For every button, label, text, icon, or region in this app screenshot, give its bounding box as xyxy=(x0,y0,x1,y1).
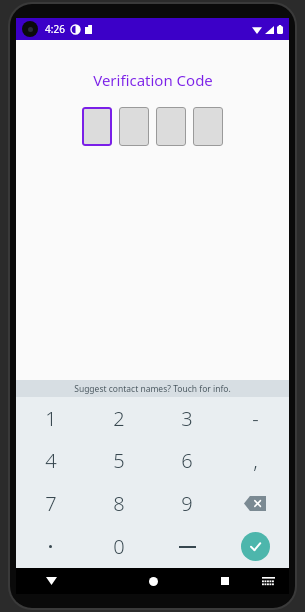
staticText: 4:26 xyxy=(45,22,65,36)
button[interactable]: 8 xyxy=(85,482,153,525)
button[interactable]: 1 xyxy=(16,397,85,439)
button[interactable] xyxy=(153,525,221,568)
button[interactable] xyxy=(119,107,149,146)
staticText: 8 xyxy=(113,490,125,517)
staticText: - xyxy=(252,405,259,432)
button[interactable]: 7 xyxy=(16,482,85,525)
button[interactable]: Delete xyxy=(221,482,289,525)
button[interactable] xyxy=(156,107,186,146)
button[interactable]: 0 xyxy=(85,525,153,568)
staticText: 1 xyxy=(45,405,57,432)
staticText: 9 xyxy=(181,490,193,517)
button[interactable]: 3 xyxy=(153,397,221,439)
button[interactable]: 6 xyxy=(153,439,221,482)
staticText: Verification Code xyxy=(93,70,213,90)
button[interactable]: , xyxy=(221,439,289,482)
staticText: 3 xyxy=(181,405,193,432)
staticText: 5 xyxy=(113,447,125,474)
button[interactable]: Suggest contact names? Touch for info. xyxy=(16,380,289,397)
button[interactable]: 4 xyxy=(16,439,85,482)
staticText: 0 xyxy=(113,533,125,560)
staticText: 2 xyxy=(113,405,125,432)
staticText: Suggest contact names? Touch for info. xyxy=(74,383,231,395)
button[interactable]: Home xyxy=(123,568,183,594)
button[interactable] xyxy=(82,107,112,146)
staticText: , xyxy=(253,447,258,474)
button[interactable]: Recents xyxy=(207,568,243,594)
button[interactable]: 2 xyxy=(85,397,153,439)
staticText: 6 xyxy=(181,447,193,474)
button[interactable]: 5 xyxy=(85,439,153,482)
button[interactable]: Confirm xyxy=(221,525,289,568)
button[interactable]: Back xyxy=(16,568,86,594)
button[interactable] xyxy=(16,525,85,568)
button[interactable]: - xyxy=(221,397,289,439)
staticText: 7 xyxy=(45,490,57,517)
button[interactable]: Switch keyboard xyxy=(253,568,283,594)
staticText: 4 xyxy=(45,447,57,474)
button[interactable]: 9 xyxy=(153,482,221,525)
button[interactable] xyxy=(193,107,223,146)
